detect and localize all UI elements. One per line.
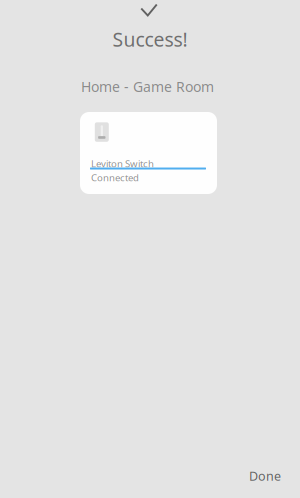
staticText: Done [249, 467, 281, 485]
button[interactable]: Leviton Switch, Connected [80, 112, 217, 194]
staticText: Success! [112, 26, 187, 52]
staticText: Leviton Switch [91, 157, 154, 170]
button[interactable]: Done [235, 459, 295, 493]
staticText: Connected [91, 171, 139, 184]
button[interactable]: Success [127, 0, 171, 22]
staticText: Home - Game Room [81, 77, 214, 96]
